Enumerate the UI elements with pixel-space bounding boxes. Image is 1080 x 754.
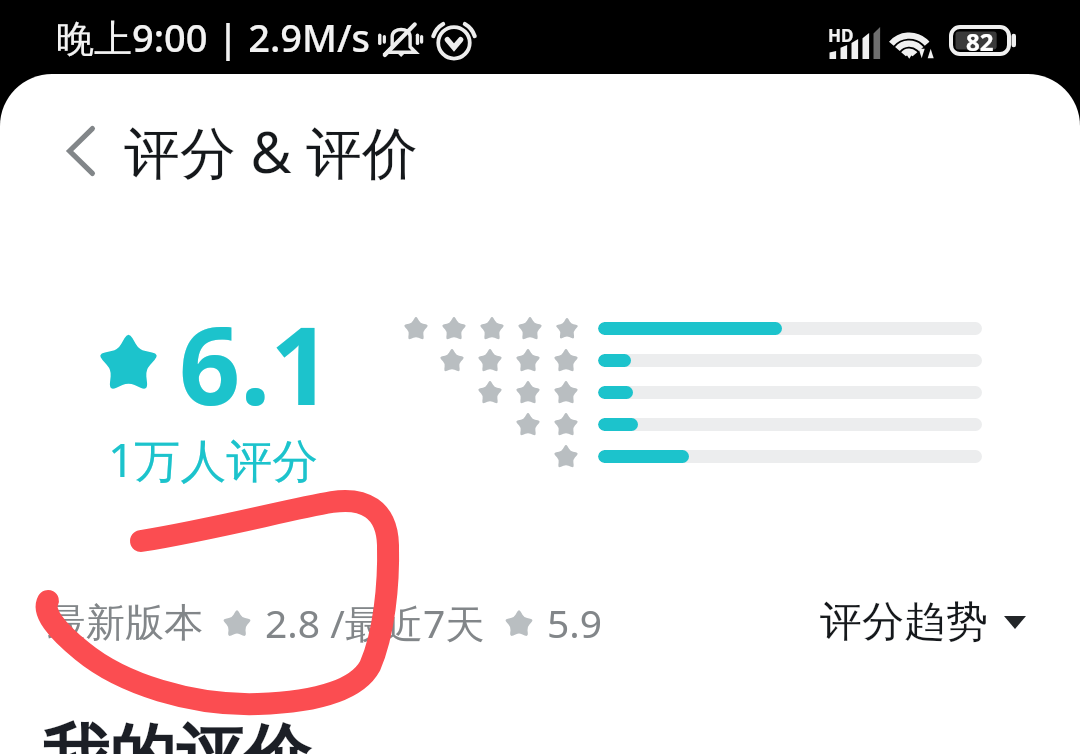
staticText: 6.1 <box>179 291 332 437</box>
button[interactable]: 5 star ratings <box>403 312 982 344</box>
staticText: 我的评价 <box>42 714 310 754</box>
button[interactable]: 评分趋势 <box>816 586 1030 659</box>
staticText: 最新版本 <box>47 598 203 647</box>
staticText: 晚上9:00 | 2.9M/s <box>56 11 371 63</box>
button[interactable]: 3 star ratings <box>403 376 982 408</box>
button[interactable]: 4 star ratings <box>403 344 982 376</box>
staticText: 评分趋势 <box>820 596 988 649</box>
staticText: 5.9 <box>547 596 603 649</box>
staticText: 评分 & 评价 <box>124 113 419 189</box>
staticText: 2.8 / <box>265 596 345 649</box>
staticText: 82 <box>966 25 994 56</box>
staticText: 1万人评分 <box>108 428 319 491</box>
button[interactable]: Back <box>53 123 109 179</box>
staticText: 最近7天 <box>345 596 485 649</box>
staticText: HD <box>828 24 854 47</box>
button[interactable]: 1 star ratings <box>403 440 982 472</box>
button[interactable]: 2 star ratings <box>403 408 982 440</box>
